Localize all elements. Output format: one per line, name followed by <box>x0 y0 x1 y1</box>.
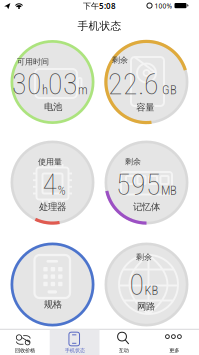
button[interactable]: 更多 <box>149 330 199 355</box>
staticText: 容量 <box>136 102 154 113</box>
button[interactable]: 使用量 <box>10 140 94 224</box>
staticText: 100% <box>154 1 172 10</box>
staticText: 更多 <box>169 347 179 354</box>
staticText: 595MB <box>116 167 177 202</box>
staticText: 网路 <box>137 301 155 312</box>
staticText: 规格 <box>44 299 62 310</box>
button[interactable]: 规格 <box>10 242 94 326</box>
staticText: 手机状态 <box>77 19 121 32</box>
staticText: 剩余 <box>112 55 128 65</box>
staticText: 30h03m <box>12 67 88 101</box>
staticText: 22.6 GB <box>108 67 177 101</box>
button[interactable]: 可用时间 <box>10 40 94 124</box>
staticText: 电池 <box>44 101 62 113</box>
staticText: 下午5:08 <box>83 0 116 11</box>
staticText: 使用量 <box>38 157 62 167</box>
staticText: 剩余 <box>136 252 152 262</box>
button[interactable]: 回收价格 <box>0 330 50 355</box>
staticText: 0KB <box>129 267 158 302</box>
staticText: 处理器 <box>39 201 66 213</box>
button[interactable]: 剩余 <box>104 140 188 224</box>
staticText: 回收价格 <box>15 347 35 354</box>
staticText: 记忆体 <box>133 201 160 213</box>
staticText: 互动 <box>118 347 128 354</box>
button[interactable]: 手机状态 <box>50 330 99 355</box>
staticText: 剩余 <box>125 157 141 166</box>
button[interactable]: 剩余 <box>104 40 188 124</box>
button[interactable]: 剩余 <box>104 242 188 326</box>
button[interactable]: 互动 <box>99 330 149 355</box>
staticText: 可用时间 <box>17 57 49 67</box>
staticText: 手机状态 <box>65 347 85 354</box>
staticText: 4% <box>42 167 65 202</box>
